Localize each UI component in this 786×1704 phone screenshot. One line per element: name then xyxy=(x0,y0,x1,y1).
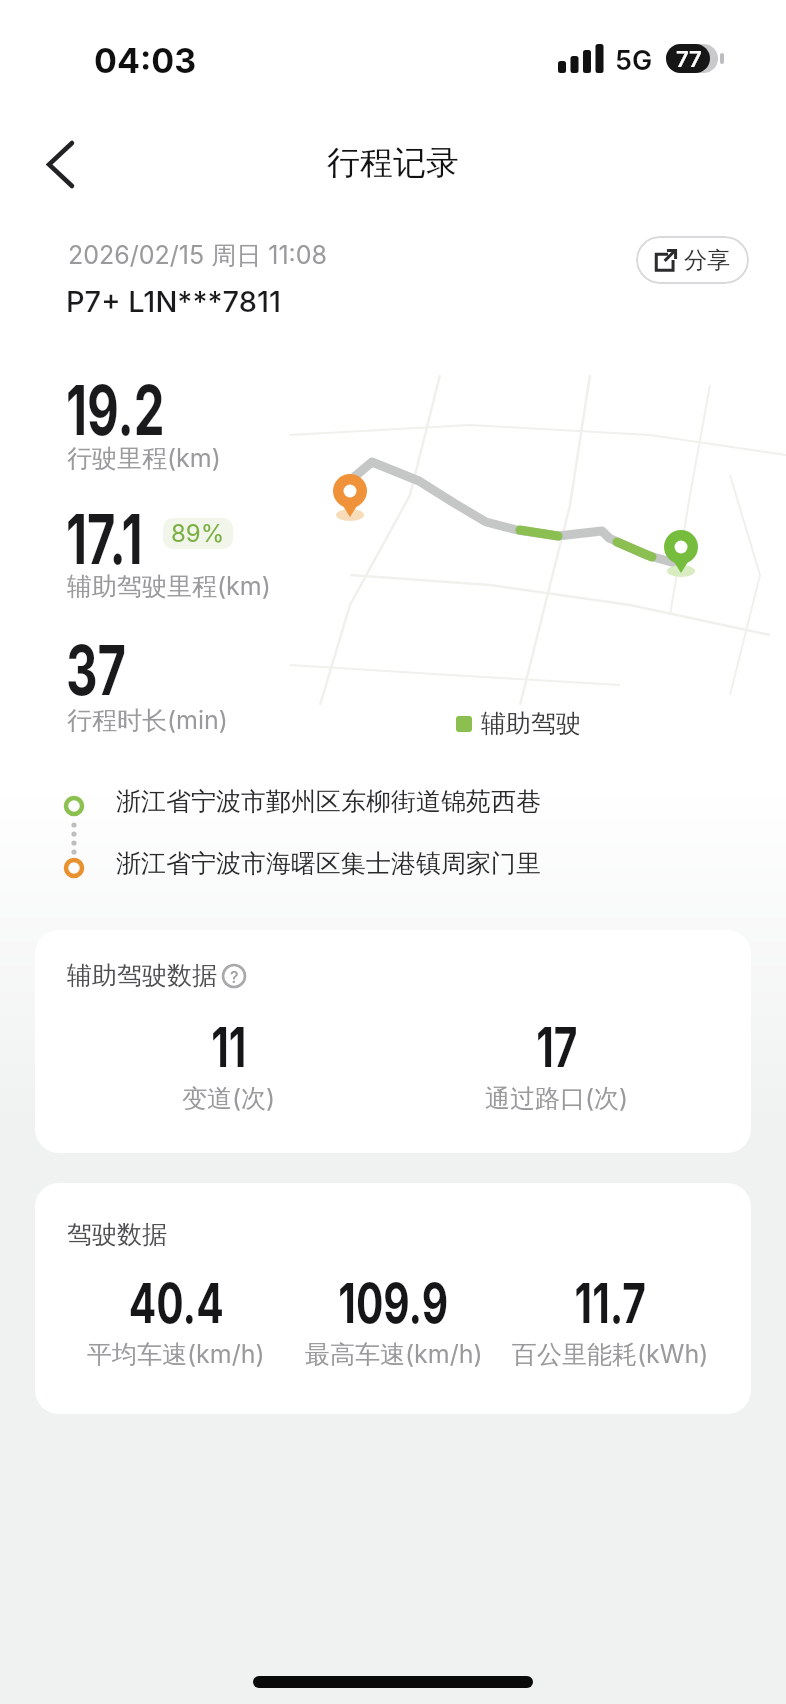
staticText: 辅助驾驶里程(km) xyxy=(67,571,271,603)
staticText: 19.2 xyxy=(66,368,165,451)
staticText: 40.4 xyxy=(129,1270,224,1337)
staticText: 11 xyxy=(211,1014,247,1081)
staticText: 辅助驾驶 xyxy=(481,708,581,739)
staticText: 5G xyxy=(615,44,653,77)
staticText: 变道(次) xyxy=(182,1083,276,1115)
staticText: 分享 xyxy=(684,246,730,275)
staticText: 浙江省宁波市海曙区集士港镇周家门里 xyxy=(116,848,541,879)
staticText: 辅助驾驶数据 xyxy=(67,960,217,991)
staticText: 109.9 xyxy=(338,1270,449,1337)
staticText: 最高车速(km/h) xyxy=(305,1339,483,1371)
staticText: 行程时长(min) xyxy=(67,705,228,737)
staticText: 行驶里程(km) xyxy=(67,443,221,475)
button[interactable]: 驾驶数据 xyxy=(35,1183,751,1414)
staticText: 17 xyxy=(536,1014,578,1081)
staticText: 11.7 xyxy=(575,1270,646,1337)
button[interactable] xyxy=(36,140,84,188)
staticText: 驾驶数据 xyxy=(67,1219,167,1250)
staticText: 89% xyxy=(171,519,225,548)
button[interactable]: 辅助驾驶数据 xyxy=(35,930,751,1153)
staticText: 77 xyxy=(676,46,702,73)
staticText: 04:03 xyxy=(94,40,197,81)
staticText: 通过路口(次) xyxy=(485,1083,629,1115)
staticText: ? xyxy=(230,967,239,986)
staticText: 百公里能耗(kWh) xyxy=(512,1339,709,1371)
staticText: 2026/02/15 周日 11:08 xyxy=(68,240,328,272)
staticText: 平均车速(km/h) xyxy=(87,1339,265,1371)
staticText: 浙江省宁波市鄞州区东柳街道锦苑西巷 xyxy=(116,786,541,817)
staticText: 17.1 xyxy=(66,497,143,580)
staticText: 37 xyxy=(66,628,126,711)
staticText: P7+ L1N***7811 xyxy=(66,284,282,319)
button[interactable]: 分享 xyxy=(636,236,749,284)
staticText: 行程记录 xyxy=(327,142,459,184)
